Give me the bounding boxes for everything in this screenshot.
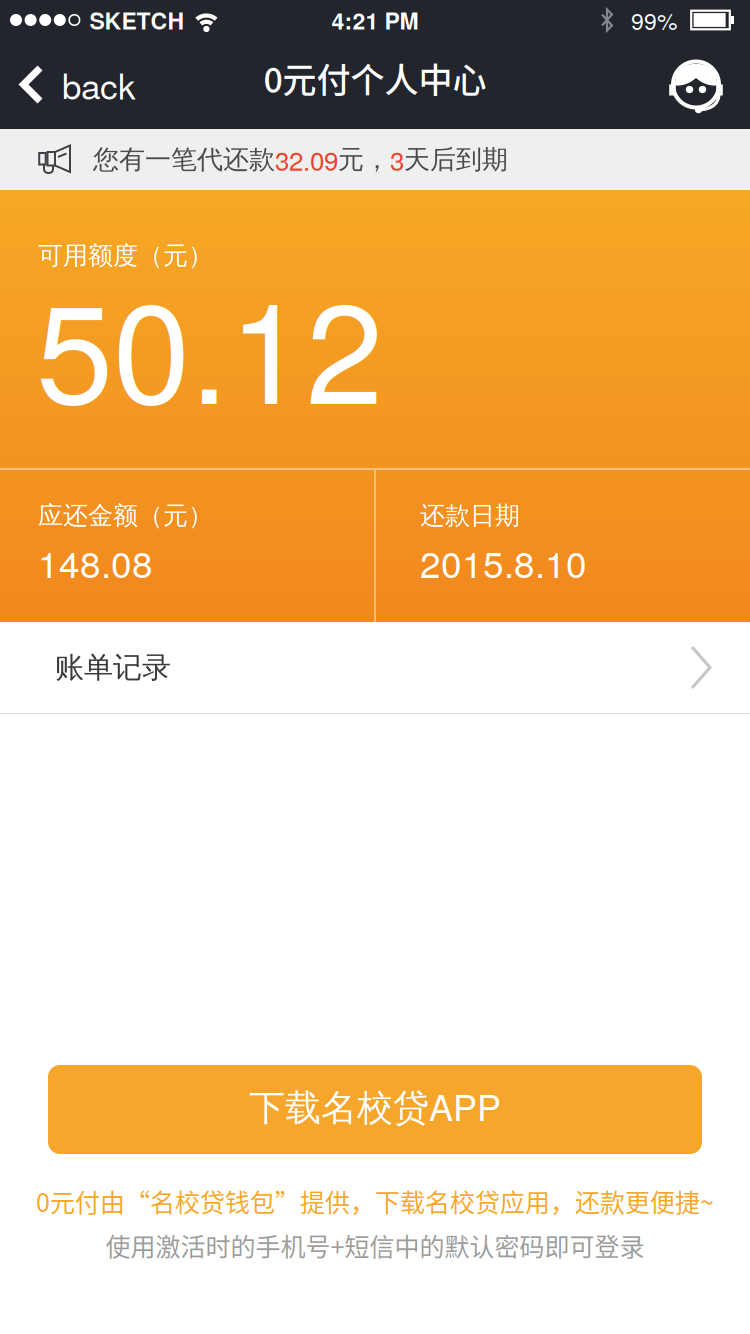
staticText: 50.12 — [36, 244, 383, 443]
staticText: 元， — [338, 143, 390, 176]
staticText: 99% — [631, 3, 677, 36]
staticText: SKETCH — [89, 3, 184, 36]
staticText: 账单记录 — [55, 649, 171, 686]
staticText: back — [62, 59, 136, 109]
button[interactable]: 下载名校贷APP — [48, 1065, 702, 1154]
staticText: 您有一笔代还款 — [93, 143, 275, 176]
staticText: 32.09 — [275, 141, 338, 178]
staticText: 3 — [390, 141, 404, 178]
staticText: 天后到期 — [404, 143, 508, 176]
staticText: 使用激活时的手机号+短信中的默认密码即可登录 — [105, 1227, 644, 1263]
staticText: 可用额度（元） — [38, 240, 213, 271]
staticText: 2015.8.10 — [420, 535, 587, 588]
staticText: 下载名校贷APP — [249, 1080, 501, 1131]
button[interactable]: Customer service — [669, 40, 750, 129]
button[interactable]: 账单记录 — [0, 622, 750, 713]
staticText: 0元付由“名校贷钱包”提供，下载名校贷应用，还款更便捷~ — [36, 1183, 714, 1219]
button[interactable]: Back — [0, 40, 136, 129]
staticText: 148.08 — [38, 535, 153, 588]
staticText: 4:21 PM — [331, 3, 418, 36]
staticText: 应还金额（元） — [38, 500, 213, 531]
staticText: 0元付个人中心 — [263, 53, 486, 103]
staticText: 还款日期 — [420, 500, 520, 531]
